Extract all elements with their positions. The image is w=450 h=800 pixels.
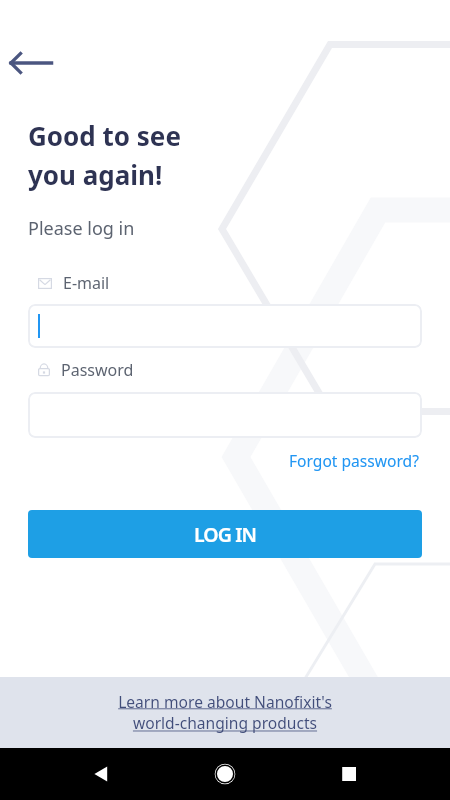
staticText: Password	[61, 359, 134, 381]
button[interactable]	[28, 304, 422, 348]
button[interactable]: Learn more about Nanofixit's world-chang…	[0, 677, 450, 748]
button[interactable]: Forgot password?	[289, 450, 419, 471]
staticText: LOG IN	[194, 521, 257, 548]
button[interactable]: Back	[6, 39, 56, 87]
button[interactable]: Recent apps	[324, 749, 374, 799]
staticText: E-mail	[63, 272, 110, 294]
staticText: Good to see you again!	[28, 118, 181, 193]
staticText: Learn more about Nanofixit's world-chang…	[118, 691, 332, 734]
button[interactable]: Home	[200, 749, 250, 799]
button[interactable]: LOG IN	[28, 510, 422, 558]
button[interactable]	[28, 392, 422, 438]
staticText: Please log in	[28, 216, 135, 241]
button[interactable]: Back	[76, 749, 126, 799]
